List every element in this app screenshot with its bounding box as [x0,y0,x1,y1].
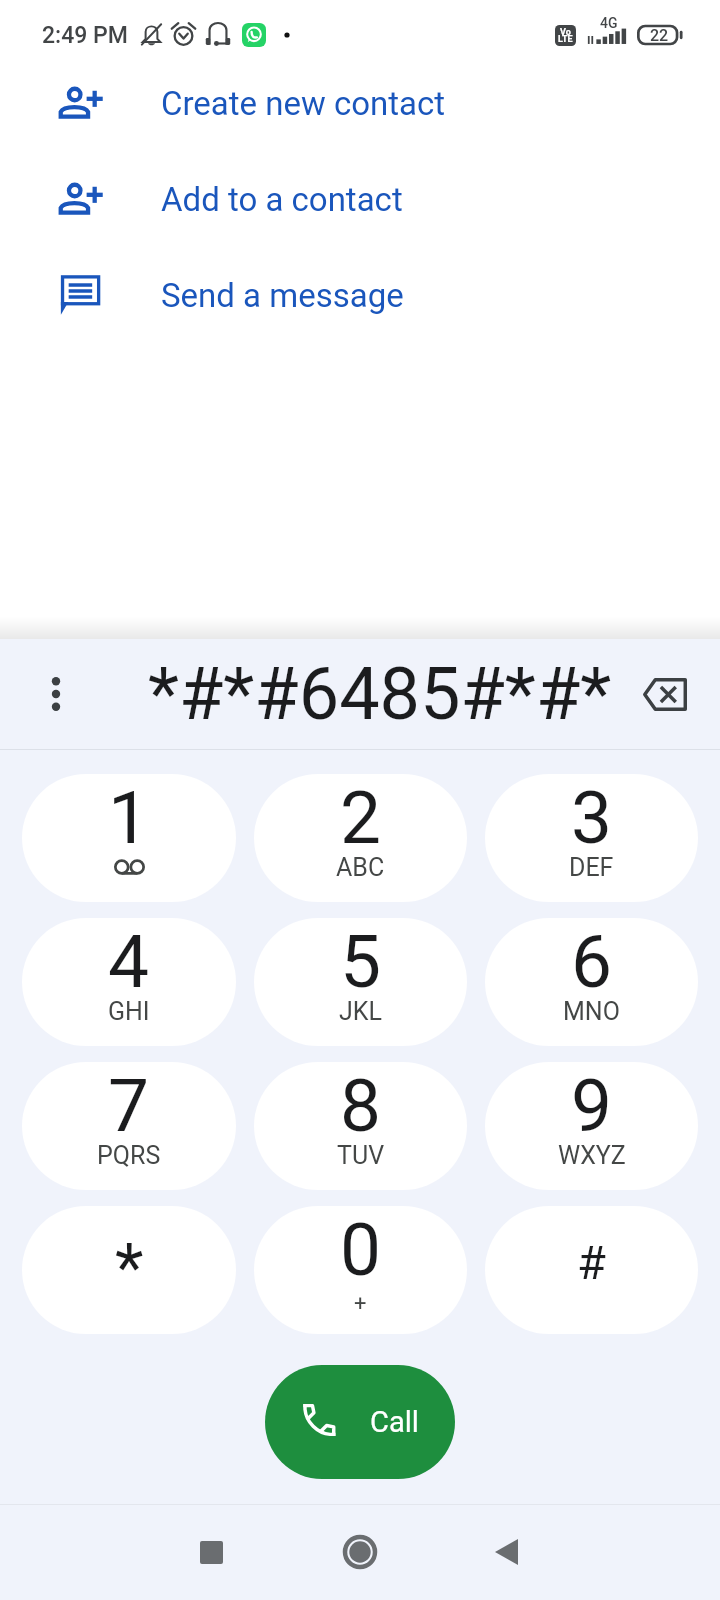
button[interactable]: 2 [254,774,467,902]
staticText: 5 [340,919,382,1005]
button[interactable]: Backspace [628,658,700,730]
button[interactable]: 8 [254,1062,467,1190]
button[interactable]: 7 [22,1062,236,1190]
button[interactable]: Back [469,1515,543,1589]
button[interactable]: * [22,1206,236,1334]
staticText: 7 [108,1063,150,1149]
staticText: * [115,1230,144,1307]
staticText: TUV [337,1141,385,1170]
staticText: 6 [571,919,613,1005]
staticText: PQRS [97,1141,161,1170]
staticText: 1 [108,775,150,861]
button[interactable]: 9 [485,1062,698,1190]
staticText: MNO [563,997,620,1026]
staticText: 2 [340,775,382,861]
button[interactable]: 4 [22,918,236,1046]
staticText: Vo [560,27,571,38]
staticText: 9 [571,1063,613,1149]
button[interactable]: Send a message [0,247,720,343]
staticText: 4G [600,15,618,31]
staticText: Add to a contact [161,180,403,219]
button[interactable]: Home [323,1515,397,1589]
button[interactable]: Recent apps [174,1515,248,1589]
button[interactable]: 5 [254,918,467,1046]
staticText: JKL [339,997,382,1026]
staticText: LTE [558,34,573,45]
staticText: WXYZ [558,1141,626,1170]
button[interactable]: Call [265,1365,455,1479]
staticText: 2:49 PM [42,22,128,49]
button[interactable]: 1 [22,774,236,902]
staticText: Create new contact [161,84,446,123]
button[interactable]: 0 [254,1206,467,1334]
button[interactable]: More options [20,658,92,730]
staticText: + [354,1291,367,1317]
staticText: *#*#6485#*#* [148,652,612,736]
staticText: Call [370,1405,419,1439]
button[interactable]: 3 [485,774,698,902]
staticText: 22 [650,26,669,45]
button[interactable]: Create new contact [0,55,720,151]
staticText: Send a message [161,276,404,315]
staticText: GHI [108,997,150,1026]
staticText: DEF [569,853,614,882]
staticText: 3 [571,775,613,861]
staticText: 4 [108,919,150,1005]
button[interactable]: 6 [485,918,698,1046]
staticText: 8 [340,1063,382,1149]
staticText: # [577,1235,606,1290]
button[interactable]: # [485,1206,698,1334]
staticText: 0 [340,1207,382,1293]
staticText: ABC [336,853,385,882]
button[interactable]: Add to a contact [0,151,720,247]
